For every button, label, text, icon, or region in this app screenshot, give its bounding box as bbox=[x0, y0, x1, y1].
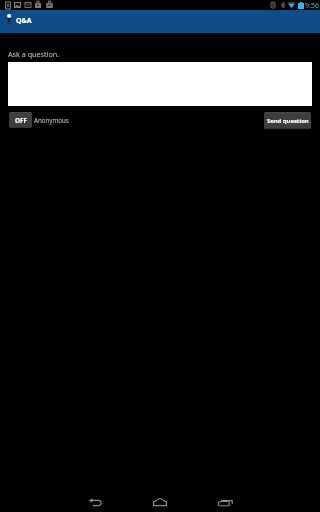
button[interactable]: OFF bbox=[9, 112, 32, 128]
button[interactable]: Recent apps bbox=[198, 488, 252, 512]
staticText: Send question bbox=[267, 117, 309, 125]
button[interactable]: Home bbox=[133, 488, 187, 512]
staticText: Q&A bbox=[16, 16, 32, 26]
staticText: Ask a question. bbox=[8, 49, 60, 59]
button[interactable]: Back bbox=[68, 488, 122, 512]
button[interactable]: Send question bbox=[264, 112, 311, 129]
staticText: OFF bbox=[15, 116, 27, 125]
staticText: 9:56 bbox=[305, 1, 319, 11]
staticText: Anonymous bbox=[34, 116, 69, 124]
